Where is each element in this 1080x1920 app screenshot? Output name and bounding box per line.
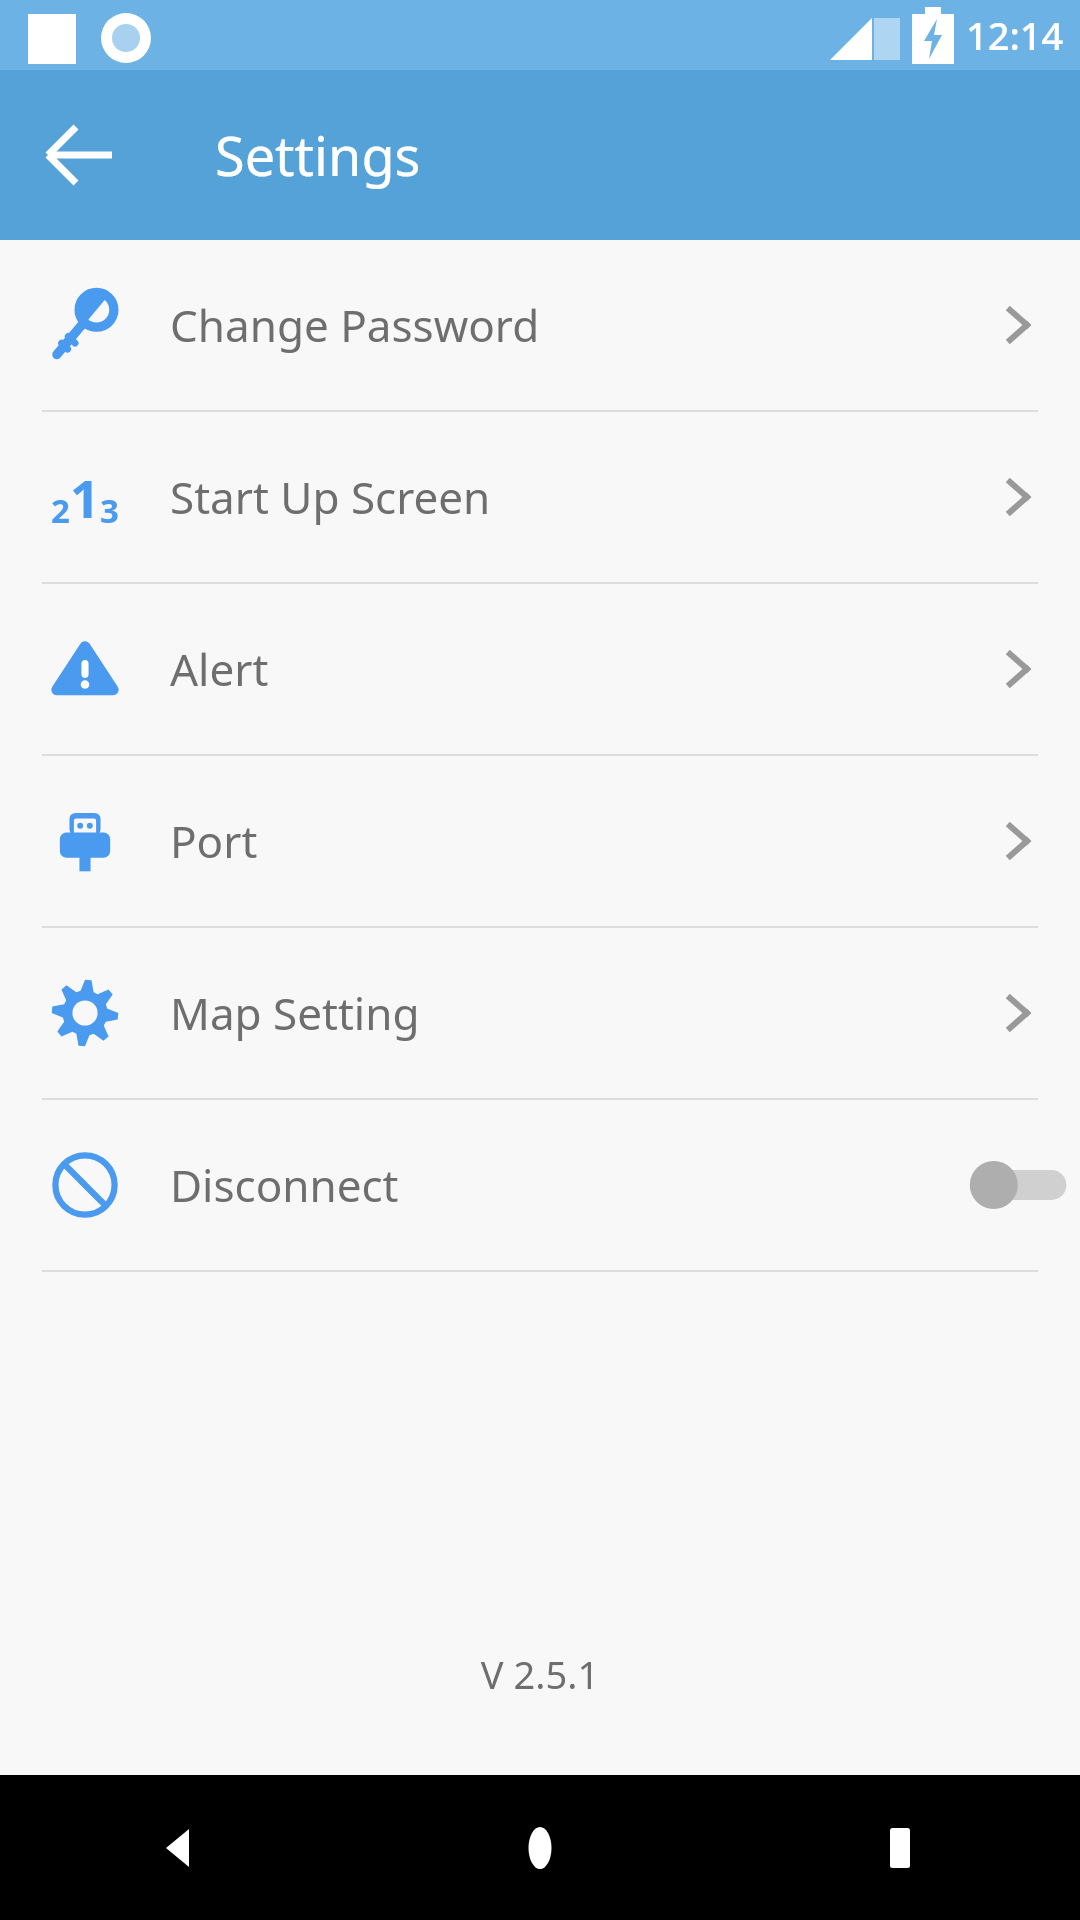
staticText: Settings	[215, 118, 421, 192]
staticText: 12:14	[966, 9, 1064, 61]
staticText: V 2.5.1	[0, 1648, 1080, 1700]
staticText: Port	[170, 811, 955, 871]
button[interactable]: Disconnect	[0, 1100, 1080, 1270]
staticText: Disconnect	[170, 1155, 955, 1215]
button[interactable]: Home	[360, 1775, 720, 1920]
button[interactable]: Back	[40, 116, 118, 194]
button[interactable]: Change Password	[0, 240, 1080, 410]
button[interactable]: Disconnect toggle	[963, 1155, 1073, 1215]
button[interactable]: Alert	[0, 584, 1080, 754]
button[interactable]: 2	[0, 412, 1080, 582]
staticText: Start Up Screen	[170, 467, 955, 527]
staticText: 1	[70, 462, 100, 533]
button[interactable]: Map Setting	[0, 928, 1080, 1098]
staticText: Map Setting	[170, 983, 955, 1043]
staticText: Change Password	[170, 295, 955, 355]
button[interactable]: Back	[0, 1775, 360, 1920]
button[interactable]: Recent apps	[720, 1775, 1080, 1920]
button[interactable]: Port	[0, 756, 1080, 926]
staticText: 3	[100, 488, 119, 533]
staticText: Alert	[170, 639, 955, 699]
staticText: 2	[51, 488, 70, 533]
